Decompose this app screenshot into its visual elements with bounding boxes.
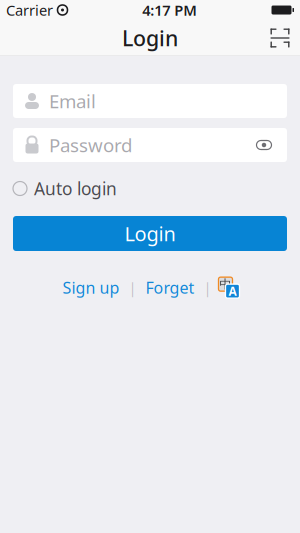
staticText: 中: [219, 277, 231, 291]
button[interactable]: Sign up: [58, 273, 123, 302]
button[interactable]: Change language: [216, 274, 241, 301]
button[interactable]: Show password: [251, 130, 277, 160]
staticText: Password: [49, 133, 132, 157]
staticText: |: [203, 278, 211, 297]
button[interactable]: Scan QR code: [260, 20, 300, 56]
staticText: Email: [49, 89, 96, 113]
staticText: A: [228, 283, 236, 299]
staticText: Login: [124, 220, 175, 247]
staticText: Sign up: [62, 277, 119, 298]
staticText: Login: [122, 24, 178, 52]
staticText: Auto login: [34, 177, 117, 200]
button[interactable]: Forget: [141, 273, 198, 302]
staticText: Forget: [145, 277, 194, 298]
staticText: |: [128, 278, 136, 297]
button[interactable]: Auto login: [13, 170, 123, 207]
staticText: Carrier: [6, 0, 53, 20]
staticText: 4:17 PM: [142, 0, 197, 20]
button[interactable]: Login: [13, 216, 287, 251]
